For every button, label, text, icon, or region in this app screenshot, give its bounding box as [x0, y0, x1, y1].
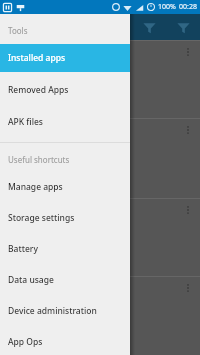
- button[interactable]: More options: [178, 278, 198, 298]
- staticText: 00:28: [179, 2, 197, 12]
- button[interactable]: Device administration settings: [0, 297, 130, 325]
- button[interactable]: More options: [0, 198, 200, 276]
- button[interactable]: APK files: [0, 108, 130, 136]
- staticText: Removed Apps: [8, 84, 69, 96]
- staticText: APK files: [8, 116, 43, 128]
- button[interactable]: More options: [0, 40, 200, 118]
- staticText: Installed apps: [8, 52, 66, 64]
- staticText: Application name:: [8, 81, 76, 92]
- button[interactable]: Installed apps: [0, 44, 130, 72]
- button[interactable]: Manage apps: [0, 173, 130, 201]
- staticText: Useful shortcuts: [8, 154, 70, 165]
- button[interactable]: More options: [0, 118, 200, 198]
- staticText: Tools: [8, 25, 28, 36]
- button[interactable]: More options: [178, 120, 198, 140]
- staticText: android.benchm: [8, 142, 71, 153]
- button[interactable]: Storage settings: [0, 204, 130, 232]
- staticText: Data usage: [8, 274, 54, 286]
- staticText: Device administration settings: [8, 305, 130, 317]
- staticText: Storage settings: [8, 212, 75, 224]
- staticText: Application name:: [8, 239, 76, 250]
- staticText: Battery: [8, 243, 38, 255]
- button[interactable]: Filter: [170, 14, 196, 40]
- button[interactable]: Battery: [0, 235, 130, 263]
- staticText: 100%: [158, 2, 176, 12]
- button[interactable]: Data usage: [0, 266, 130, 294]
- staticText: App Ops: [8, 336, 43, 348]
- staticText: Manage apps: [8, 181, 63, 193]
- button[interactable]: Removed Apps: [0, 76, 130, 104]
- button[interactable]: App Ops: [0, 328, 130, 355]
- button[interactable]: Sort: [136, 14, 162, 40]
- button[interactable]: More options: [0, 276, 200, 355]
- staticText: Photos: [8, 63, 35, 74]
- button[interactable]: More options: [178, 200, 198, 220]
- staticText: Package name:: [8, 160, 66, 171]
- button[interactable]: More options: [178, 42, 198, 62]
- staticText: Battery: [8, 221, 36, 232]
- staticText: Fix global: [8, 300, 44, 311]
